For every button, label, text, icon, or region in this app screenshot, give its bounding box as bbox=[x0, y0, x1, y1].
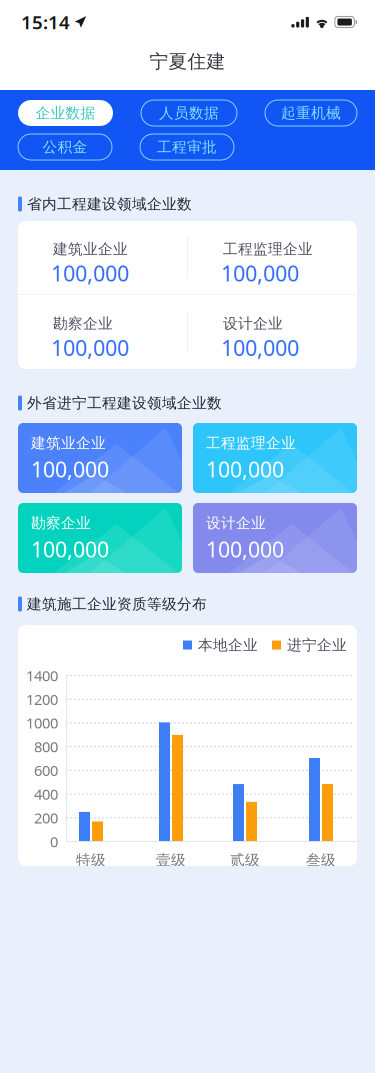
staticText: 勘察企业 bbox=[53, 314, 113, 332]
staticText: 800 bbox=[34, 737, 58, 756]
button[interactable]: 人员数据 bbox=[141, 100, 237, 126]
staticText: 100,000 bbox=[31, 455, 109, 483]
staticText: 企业数据 bbox=[35, 104, 95, 122]
staticText: 1000 bbox=[26, 713, 58, 733]
staticText: 0 bbox=[50, 832, 58, 851]
staticText: 人员数据 bbox=[159, 104, 219, 122]
staticText: 省内工程建设领域企业数 bbox=[27, 195, 192, 213]
staticText: 100,000 bbox=[51, 259, 129, 287]
staticText: 设计企业 bbox=[223, 314, 283, 332]
staticText: 400 bbox=[34, 784, 58, 804]
staticText: 100,000 bbox=[221, 333, 299, 362]
staticText: 200 bbox=[34, 808, 58, 827]
staticText: 进宁企业 bbox=[287, 636, 347, 654]
staticText: 公积金 bbox=[42, 138, 87, 156]
staticText: 叁级 bbox=[306, 851, 336, 869]
button[interactable]: 工程审批 bbox=[140, 134, 234, 160]
staticText: 1400 bbox=[26, 666, 58, 685]
staticText: 外省进宁工程建设领域企业数 bbox=[27, 394, 222, 412]
staticText: 100,000 bbox=[31, 535, 109, 563]
staticText: 100,000 bbox=[221, 259, 299, 287]
staticText: 本地企业 bbox=[198, 636, 258, 654]
staticText: 工程审批 bbox=[157, 138, 217, 156]
staticText: 设计企业 bbox=[206, 514, 266, 532]
staticText: 100,000 bbox=[206, 535, 284, 563]
staticText: 贰级 bbox=[230, 851, 260, 869]
button[interactable]: 企业数据 bbox=[18, 100, 113, 126]
staticText: 工程监理企业 bbox=[206, 434, 296, 452]
staticText: 100,000 bbox=[206, 455, 284, 483]
staticText: 起重机械 bbox=[281, 104, 341, 122]
staticText: 勘察企业 bbox=[31, 514, 91, 532]
button[interactable]: 起重机械 bbox=[265, 100, 357, 126]
staticText: 建筑施工企业资质等级分布 bbox=[27, 595, 207, 613]
staticText: 宁夏住建 bbox=[149, 50, 225, 73]
staticText: 600 bbox=[34, 761, 58, 780]
staticText: 100,000 bbox=[51, 333, 129, 362]
staticText: 建筑业企业 bbox=[53, 240, 128, 258]
staticText: 建筑业企业 bbox=[31, 434, 106, 452]
staticText: 1200 bbox=[26, 689, 58, 709]
staticText: 工程监理企业 bbox=[223, 240, 313, 258]
staticText: 壹级 bbox=[156, 851, 186, 869]
staticText: 特级 bbox=[76, 851, 106, 869]
staticText: 15:14 bbox=[21, 10, 70, 34]
button[interactable]: 公积金 bbox=[18, 134, 112, 160]
